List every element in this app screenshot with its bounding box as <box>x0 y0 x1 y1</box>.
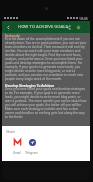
staticText: 18:45 <box>79 16 88 20</box>
staticText: Develop Strategies To Achieve <box>5 83 55 87</box>
staticText: HOW TO ACHIEVE GOALS <box>18 24 68 30</box>
button[interactable]: Favorite <box>73 22 83 32</box>
button[interactable]: Gmail <box>9 138 24 155</box>
staticText: First list down all the accomplishment i… <box>5 37 87 81</box>
staticText: Gmail <box>13 151 21 155</box>
staticText: Telegram <box>25 151 38 155</box>
staticText: Seriously <box>5 33 20 37</box>
staticText: Once you have listed your goals and deve… <box>5 87 87 119</box>
button[interactable]: Telegram <box>24 138 39 155</box>
button[interactable]: Back <box>2 21 14 33</box>
button[interactable]: Share <box>63 22 73 32</box>
staticText: Share <box>6 129 16 134</box>
